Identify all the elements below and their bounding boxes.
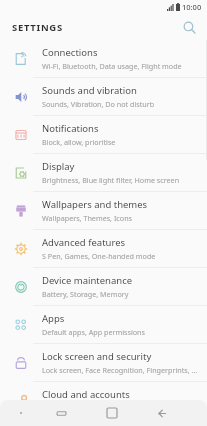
staticText: Sounds and vibration (42, 84, 137, 97)
staticText: Apps (42, 312, 65, 325)
button[interactable]: Lock screen and security (0, 344, 207, 381)
staticText: Wallpapers and themes (42, 198, 148, 211)
button[interactable]: Recents (36, 400, 87, 426)
staticText: Lock screen and security (42, 350, 152, 363)
button[interactable]: Home (87, 400, 137, 426)
staticText: Advanced features (42, 236, 126, 249)
button[interactable]: Device maintenance (0, 268, 207, 305)
staticText: Connections (42, 46, 98, 59)
staticText: Default apps, App permissions (42, 327, 145, 337)
button[interactable]: Search (179, 17, 199, 37)
staticText: Brightness, Blue light filter, Home scre… (42, 175, 180, 185)
button[interactable]: Advanced features (0, 230, 207, 267)
staticText: Battery, Storage, Memory (42, 289, 129, 299)
button[interactable]: Menu (6, 400, 36, 426)
button[interactable]: Wallpapers and themes (0, 192, 207, 229)
staticText: Display (42, 160, 75, 173)
staticText: Notifications (42, 122, 99, 135)
button[interactable]: Sounds and vibration (0, 78, 207, 115)
staticText: 10:00 (182, 2, 202, 12)
staticText: Sounds, Vibration, Do not disturb (42, 99, 155, 109)
staticText: Lock screen, Face Recognition, Fingerpri… (42, 365, 199, 375)
button[interactable]: Notifications (0, 116, 207, 153)
staticText: Samsung Cloud, Backup and restore, Smart… (42, 403, 199, 413)
staticText: Device maintenance (42, 274, 133, 287)
staticText: SETTINGS (12, 21, 63, 34)
button[interactable]: Connections (0, 40, 207, 77)
staticText: Block, allow, prioritise (42, 137, 116, 147)
button[interactable]: Back (137, 400, 187, 426)
button[interactable]: Display (0, 154, 207, 191)
staticText: Wi-Fi, Bluetooth, Data usage, Flight mod… (42, 61, 182, 71)
button[interactable]: Apps (0, 306, 207, 343)
button[interactable]: Cloud and accounts (0, 382, 207, 419)
staticText: Wallpapers, Themes, Icons (42, 213, 133, 223)
staticText: Cloud and accounts (42, 388, 130, 401)
staticText: S Pen, Games, One-handed mode (42, 251, 156, 261)
